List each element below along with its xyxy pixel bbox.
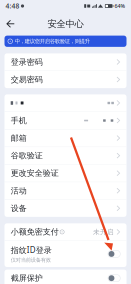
- staticText: 交易密码: [11, 75, 43, 84]
- button[interactable]: [4, 94, 126, 111]
- button[interactable]: 活动: [4, 182, 126, 199]
- staticText: 4:48: [5, 2, 19, 10]
- staticText: 仅对当前设备有效: [11, 257, 51, 263]
- staticText: 登录密码: [11, 57, 43, 67]
- button[interactable]: 截屏保护: [4, 270, 126, 284]
- button[interactable]: 登录密码: [4, 53, 126, 70]
- button[interactable]: 手机: [4, 112, 126, 129]
- staticText: 更改安全验证: [11, 168, 59, 178]
- staticText: 指纹ID登录: [11, 245, 52, 255]
- staticText: 手机: [11, 116, 27, 125]
- button[interactable]: 邮箱: [4, 129, 126, 147]
- staticText: 64%: [114, 2, 125, 10]
- staticText: 未开启: [93, 228, 114, 236]
- button[interactable]: 中，建议您开启谷歌验证，则提升: [0, 36, 131, 47]
- staticText: 邮箱: [11, 133, 27, 143]
- staticText: 小额免密支付: [11, 227, 59, 237]
- staticText: 中，建议您开启谷歌验证，则提升: [15, 38, 90, 45]
- staticText: 设备: [11, 203, 27, 213]
- staticText: 截屏保护: [11, 273, 43, 283]
- staticText: 安全中心: [47, 18, 83, 30]
- staticText: 谷歌验证: [11, 151, 43, 160]
- staticText: 活动: [11, 186, 27, 196]
- button[interactable]: 交易密码: [4, 71, 126, 88]
- button[interactable]: 小额免密支付: [4, 223, 126, 240]
- button[interactable]: 设备: [4, 200, 126, 217]
- button[interactable]: 指纹ID登录: [4, 241, 126, 267]
- button[interactable]: 更改安全验证: [4, 165, 126, 182]
- button[interactable]: 谷歌验证: [4, 147, 126, 164]
- button[interactable]: Back: [2, 17, 18, 31]
